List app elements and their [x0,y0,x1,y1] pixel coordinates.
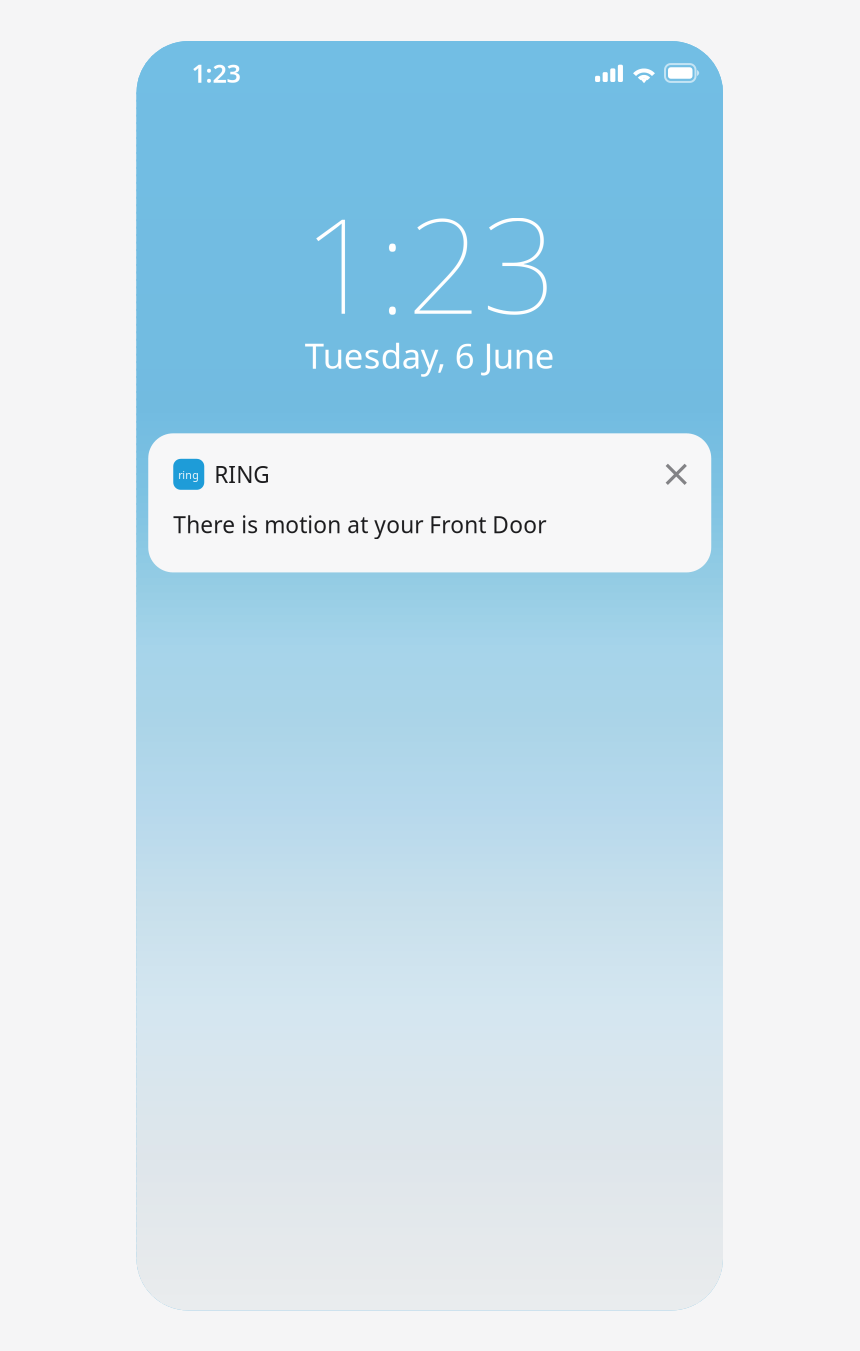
staticText: 1:23 [303,175,557,350]
staticText: 1:23 [191,56,240,90]
button[interactable]: ring [148,433,711,572]
staticText: There is motion at your Front Door [173,509,546,539]
staticText: ring [178,468,199,482]
staticText: Tuesday, 6 June [305,332,555,378]
staticText: RING [214,459,270,489]
button[interactable]: Dismiss notification [659,457,693,491]
